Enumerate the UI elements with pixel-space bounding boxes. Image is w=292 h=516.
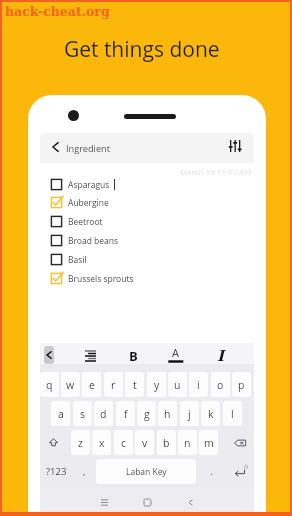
button[interactable]: d — [94, 401, 113, 426]
staticText: Basil — [68, 254, 87, 266]
button[interactable]: Previous — [44, 346, 54, 364]
button[interactable]: B — [125, 345, 141, 366]
button[interactable]: Beetroot — [49, 212, 239, 231]
staticText: g — [144, 407, 150, 421]
button[interactable]: r — [104, 372, 123, 397]
staticText: k — [208, 407, 214, 421]
button[interactable]: I — [212, 345, 230, 366]
button[interactable]: o — [211, 372, 230, 397]
staticText: r — [111, 378, 116, 392]
staticText: j — [188, 407, 191, 421]
staticText: t — [133, 378, 137, 392]
button[interactable]: Broad beans — [49, 231, 239, 250]
button[interactable]: s — [73, 401, 92, 426]
button[interactable]: v — [135, 430, 154, 455]
button[interactable]: h — [158, 401, 177, 426]
button[interactable]: Back — [46, 138, 64, 156]
staticText: Aubergine — [68, 197, 109, 209]
button[interactable]: m — [199, 430, 218, 455]
button[interactable]: j — [180, 401, 199, 426]
button[interactable]: z — [71, 430, 90, 455]
button[interactable]: Shift — [41, 430, 66, 455]
staticText: A — [172, 345, 179, 360]
staticText: i — [197, 378, 200, 392]
staticText: Get things done — [64, 35, 220, 64]
staticText: e — [89, 378, 95, 392]
button[interactable]: q — [40, 372, 59, 397]
staticText: Asparagus — [68, 179, 110, 191]
staticText: Ingredient — [66, 142, 110, 155]
staticText: x — [99, 436, 105, 450]
staticText: a — [58, 407, 64, 421]
staticText: hack-cheat.org — [5, 4, 110, 19]
staticText: p — [238, 378, 245, 392]
staticText: q — [46, 378, 53, 392]
button[interactable]: Text colour — [168, 343, 184, 364]
staticText: Brussels sprouts — [68, 273, 134, 285]
button[interactable]: b — [157, 430, 176, 455]
staticText: March 19 11:09 AM — [180, 166, 252, 177]
button[interactable]: Aubergine — [49, 193, 239, 212]
staticText: c — [121, 436, 126, 450]
staticText: Broad beans — [68, 235, 119, 247]
button[interactable]: Backspace — [226, 430, 253, 455]
button[interactable]: Align text — [85, 350, 96, 362]
staticText: w — [66, 378, 75, 392]
button[interactable]: . — [200, 459, 222, 484]
staticText: , — [83, 465, 86, 478]
staticText: m — [204, 436, 214, 450]
staticText: . — [210, 465, 213, 478]
button[interactable]: Back — [182, 494, 198, 510]
button[interactable]: a — [51, 401, 70, 426]
button[interactable]: f — [116, 401, 135, 426]
staticText: s — [80, 407, 86, 421]
staticText: Beetroot — [68, 216, 103, 228]
staticText: z — [78, 436, 83, 450]
button[interactable]: Basil — [49, 250, 239, 269]
button[interactable]: c — [114, 430, 133, 455]
button[interactable]: Enter — [226, 459, 253, 484]
button[interactable]: l — [223, 401, 242, 426]
staticText: f — [124, 407, 128, 421]
button[interactable]: Recent apps — [96, 494, 112, 510]
button[interactable]: p — [232, 372, 251, 397]
staticText: u — [174, 378, 181, 392]
button[interactable]: , — [73, 459, 95, 484]
staticText: v — [142, 436, 148, 450]
staticText: n — [184, 436, 191, 450]
staticText: l — [231, 407, 234, 421]
button[interactable]: i — [189, 372, 208, 397]
button[interactable]: Asparagus — [49, 175, 239, 194]
button[interactable]: g — [137, 401, 156, 426]
button[interactable]: k — [201, 401, 220, 426]
button[interactable]: w — [61, 372, 80, 397]
staticText: h — [164, 407, 171, 421]
staticText: y — [154, 378, 160, 392]
staticText: I — [217, 347, 225, 365]
button[interactable]: y — [147, 372, 166, 397]
staticText: d — [100, 407, 107, 421]
staticText: Laban Key — [126, 466, 167, 478]
button[interactable]: u — [168, 372, 187, 397]
button[interactable]: ?123 — [40, 459, 73, 484]
button[interactable]: Laban Key — [96, 459, 196, 484]
button[interactable]: n — [178, 430, 197, 455]
button[interactable]: Home — [139, 494, 155, 510]
button[interactable]: e — [82, 372, 101, 397]
staticText: B — [129, 347, 138, 365]
staticText: ?123 — [46, 465, 67, 478]
button[interactable]: Brussels sprouts — [49, 269, 239, 288]
staticText: o — [217, 378, 224, 392]
button[interactable]: Settings — [226, 137, 244, 155]
button[interactable]: t — [125, 372, 144, 397]
staticText: b — [163, 436, 170, 450]
button[interactable]: x — [92, 430, 111, 455]
